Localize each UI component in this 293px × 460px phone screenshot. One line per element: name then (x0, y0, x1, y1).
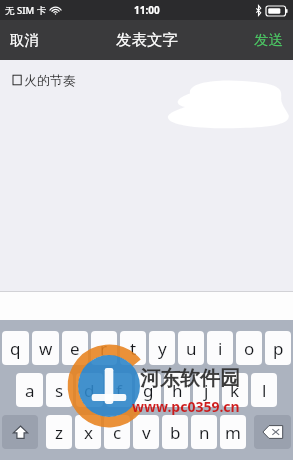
staticText: l (262, 379, 267, 402)
staticText: www.pc0359.cn (132, 397, 240, 416)
staticText: o (244, 337, 255, 360)
staticText: d (84, 379, 95, 402)
button[interactable]: m (220, 415, 246, 449)
staticText: a (25, 379, 35, 402)
staticText: 发表文字 (116, 30, 178, 50)
staticText: z (55, 421, 63, 444)
button[interactable]: 火的节奏 (0, 60, 293, 291)
button[interactable]: c (104, 415, 130, 449)
button[interactable]: Backspace (254, 415, 291, 449)
staticText: p (273, 337, 284, 360)
staticText: q (10, 337, 21, 360)
staticText: b (170, 421, 181, 444)
button[interactable]: r (91, 331, 117, 365)
button[interactable]: 取消 (0, 23, 49, 57)
staticText: j (204, 379, 209, 402)
button[interactable]: h (164, 373, 190, 407)
button[interactable]: o (236, 331, 262, 365)
staticText: c (113, 421, 122, 444)
button[interactable]: d (76, 373, 103, 407)
button[interactable]: n (191, 415, 217, 449)
staticText: h (172, 379, 183, 402)
button[interactable]: y (149, 331, 175, 365)
staticText: 无 SIM 卡 (5, 4, 47, 17)
staticText: 发送 (254, 31, 283, 49)
button[interactable]: Shift (2, 415, 38, 449)
staticText: 11:00 (134, 3, 160, 17)
button[interactable]: t (120, 331, 146, 365)
staticText: m (225, 421, 241, 444)
staticText: v (142, 421, 151, 444)
button[interactable]: q (2, 331, 29, 365)
button[interactable]: e (62, 331, 88, 365)
button[interactable]: z (46, 415, 72, 449)
button[interactable]: j (193, 373, 219, 407)
staticText: 取消 (10, 31, 39, 49)
staticText: u (186, 337, 197, 360)
staticText: w (39, 337, 53, 360)
button[interactable]: v (133, 415, 159, 449)
staticText: x (84, 421, 93, 444)
staticText: 火的节奏 (24, 72, 76, 88)
button[interactable]: s (46, 373, 73, 407)
button[interactable]: g (135, 373, 161, 407)
staticText: k (230, 379, 240, 402)
staticText: y (158, 337, 167, 360)
button[interactable]: u (178, 331, 204, 365)
staticText: f (116, 379, 122, 402)
button[interactable]: b (162, 415, 188, 449)
button[interactable]: x (75, 415, 101, 449)
staticText: g (143, 379, 154, 402)
button[interactable]: l (251, 373, 277, 407)
button[interactable]: a (16, 373, 43, 407)
staticText: t (130, 337, 137, 360)
button[interactable]: i (207, 331, 233, 365)
button[interactable]: p (265, 331, 291, 365)
staticText: 河东软件园 (140, 366, 240, 391)
button[interactable]: 发送 (244, 23, 293, 57)
staticText: s (55, 379, 64, 402)
staticText: r (100, 337, 108, 360)
staticText: e (70, 337, 80, 360)
button[interactable]: f (106, 373, 132, 407)
button[interactable]: w (32, 331, 59, 365)
button[interactable]: k (222, 373, 248, 407)
staticText: i (218, 337, 223, 360)
staticText: n (199, 421, 210, 444)
